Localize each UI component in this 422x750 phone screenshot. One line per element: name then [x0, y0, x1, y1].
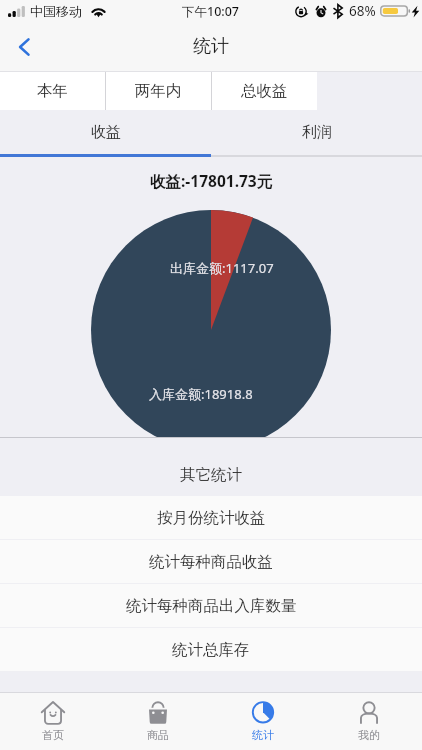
staticText: 统计每种商品出入库数量: [126, 596, 297, 616]
staticText: 两年内: [135, 81, 182, 101]
button[interactable]: Back: [0, 22, 48, 71]
button[interactable]: 总收益: [212, 71, 317, 110]
staticText: 收益: [91, 123, 121, 142]
staticText: 统计: [252, 728, 274, 742]
staticText: 收益:-17801.73元: [150, 170, 273, 191]
staticText: 中国移动: [30, 3, 82, 19]
staticText: 按月份统计收益: [157, 508, 266, 528]
staticText: 统计: [193, 35, 229, 58]
staticText: 出库金额:1117.07: [170, 259, 274, 277]
button[interactable]: 其它统计: [0, 438, 422, 496]
button[interactable]: 利润: [211, 110, 422, 154]
staticText: 商品: [147, 728, 169, 742]
staticText: 统计每种商品收益: [149, 552, 273, 572]
button[interactable]: 收益: [0, 110, 211, 154]
staticText: 首页: [42, 728, 64, 742]
staticText: 下午10:07: [182, 3, 240, 20]
staticText: 我的: [358, 728, 380, 742]
staticText: 入库金额:18918.8: [149, 385, 253, 403]
staticText: 统计总库存: [172, 640, 250, 660]
button[interactable]: 两年内: [106, 71, 211, 110]
staticText: 其它统计: [180, 465, 242, 485]
button[interactable]: 本年: [0, 71, 105, 110]
button[interactable]: 统计每种商品出入库数量: [0, 584, 422, 627]
staticText: 总收益: [241, 81, 288, 101]
button[interactable]: 按月份统计收益: [0, 496, 422, 539]
button[interactable]: 统计总库存: [0, 628, 422, 671]
button[interactable]: 商品: [105, 693, 210, 750]
button[interactable]: 统计每种商品收益: [0, 540, 422, 583]
staticText: 本年: [37, 81, 68, 101]
staticText: 68%: [349, 2, 376, 20]
button[interactable]: 首页: [0, 693, 105, 750]
staticText: 利润: [302, 123, 332, 142]
button[interactable]: 我的: [316, 693, 422, 750]
button[interactable]: 统计: [210, 693, 316, 750]
